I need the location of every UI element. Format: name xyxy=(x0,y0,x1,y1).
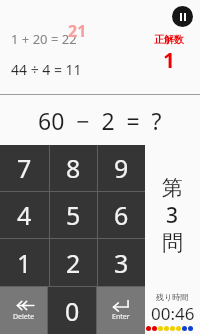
button[interactable]: Delete xyxy=(0,287,47,334)
button[interactable]: Pause xyxy=(172,6,193,27)
button[interactable]: 7 xyxy=(0,145,49,191)
button[interactable]: 3 xyxy=(98,239,145,286)
staticText: 1 xyxy=(17,246,32,280)
staticText: 8 xyxy=(66,151,81,185)
staticText: 2 xyxy=(66,246,81,280)
button[interactable]: 2 xyxy=(50,239,97,286)
button[interactable]: 0 xyxy=(48,287,96,334)
button[interactable]: 4 xyxy=(0,192,49,238)
staticText: 第 xyxy=(162,175,183,201)
staticText: 問 xyxy=(162,230,183,256)
staticText: 3 xyxy=(114,246,129,280)
button[interactable]: 9 xyxy=(98,145,145,191)
staticText: 6 xyxy=(114,198,129,232)
staticText: 60 − 2 = ? xyxy=(38,105,162,136)
button[interactable]: Enter xyxy=(97,287,145,334)
staticText: 3 xyxy=(166,201,179,230)
staticText: 00:46 xyxy=(151,302,195,325)
staticText: Enter xyxy=(112,312,130,322)
staticText: 1 + 20 = 22 xyxy=(11,30,77,48)
staticText: 1 xyxy=(163,46,176,75)
button[interactable]: 5 xyxy=(50,192,97,238)
staticText: 9 xyxy=(114,151,129,185)
button[interactable]: 6 xyxy=(98,192,145,238)
staticText: 4 xyxy=(17,198,32,232)
button[interactable]: 8 xyxy=(50,145,97,191)
staticText: 7 xyxy=(17,151,32,185)
staticText: 残り時間 xyxy=(156,292,189,302)
staticText: Delete xyxy=(13,312,35,322)
staticText: 21 xyxy=(68,20,87,42)
staticText: 44 ÷ 4 = 11 xyxy=(11,60,82,79)
staticText: 0 xyxy=(65,294,80,328)
button[interactable]: 1 xyxy=(0,239,49,286)
staticText: 5 xyxy=(66,198,81,232)
staticText: 正解数 xyxy=(154,33,184,46)
